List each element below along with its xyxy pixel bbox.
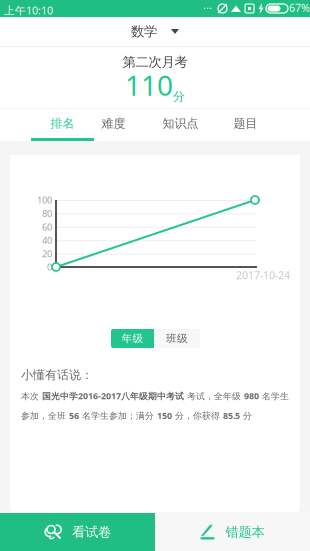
staticText: 110 [125,66,173,104]
button[interactable]: 排名 [31,109,94,141]
staticText: 本次 国光中学2016-2017八年级期中考试 考试，全年级 980 名学生参加… [21,390,289,421]
button[interactable]: 年级 [111,329,154,348]
staticText: 80 [42,207,52,220]
staticText: 排名 [50,116,74,131]
staticText: 上午10:10 [4,3,53,17]
staticText: 班级 [166,332,188,345]
staticText: 20 [42,247,52,260]
staticText: 年级 [121,332,143,345]
staticText: 60 [42,220,52,233]
staticText: 错题本 [225,524,264,540]
button[interactable]: 班级 [154,329,200,348]
staticText: ··· [203,0,212,15]
staticText: 知识点 [162,116,198,131]
staticText: 小懂有话说： [21,367,93,382]
button[interactable]: 数学 [115,17,195,46]
button[interactable]: 错题本 [155,513,310,551]
staticText: 40 [42,234,52,246]
button[interactable]: 题目 [214,109,277,141]
staticText: 看试卷 [72,524,111,540]
button[interactable]: 知识点 [149,109,212,141]
staticText: 67% [289,0,310,15]
staticText: 0 [47,261,52,273]
staticText: 难度 [101,116,125,131]
staticText: 题目 [233,116,257,131]
staticText: 分 [173,89,185,104]
staticText: 数学 [131,23,157,40]
staticText: 第二次月考 [122,54,187,70]
button[interactable]: 难度 [82,109,145,141]
button[interactable]: 看试卷 [0,513,155,551]
staticText: 2017-10-24 [236,268,290,282]
staticText: 100 [37,194,52,206]
